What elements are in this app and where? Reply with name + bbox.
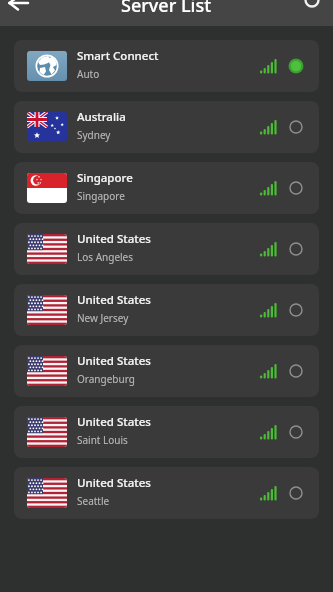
staticText: Server List [121, 0, 212, 18]
button[interactable] [288, 180, 304, 196]
button[interactable] [288, 241, 304, 257]
staticText: United States [77, 292, 151, 308]
button[interactable]: United States [14, 284, 319, 336]
staticText: Seattle [77, 494, 110, 508]
button[interactable]: United States [14, 345, 319, 397]
staticText: United States [77, 414, 151, 430]
staticText: Orangeburg [77, 372, 135, 386]
button[interactable]: United States [14, 223, 319, 275]
button[interactable] [288, 424, 304, 440]
button[interactable]: United States [14, 406, 319, 458]
staticText: Australia [77, 109, 126, 125]
staticText: Saint Louis [77, 433, 128, 447]
staticText: Auto [77, 67, 100, 81]
button[interactable]: Australia [14, 101, 319, 153]
staticText: United States [77, 475, 151, 491]
button[interactable] [288, 302, 304, 318]
staticText: Singapore [77, 170, 133, 186]
button[interactable]: Smart Connect [14, 40, 319, 92]
button[interactable] [0, 0, 34, 26]
button[interactable]: United States [14, 467, 319, 519]
staticText: United States [77, 353, 151, 369]
staticText: Los Angeles [77, 250, 134, 264]
button[interactable] [288, 363, 304, 379]
staticText: Singapore [77, 189, 125, 203]
button[interactable]: Singapore [14, 162, 319, 214]
button[interactable] [288, 119, 304, 135]
staticText: Sydney [77, 128, 111, 142]
button[interactable] [288, 485, 304, 501]
staticText: New Jersey [77, 311, 129, 325]
button[interactable] [288, 58, 304, 74]
staticText: Smart Connect [77, 48, 159, 64]
staticText: United States [77, 231, 151, 247]
